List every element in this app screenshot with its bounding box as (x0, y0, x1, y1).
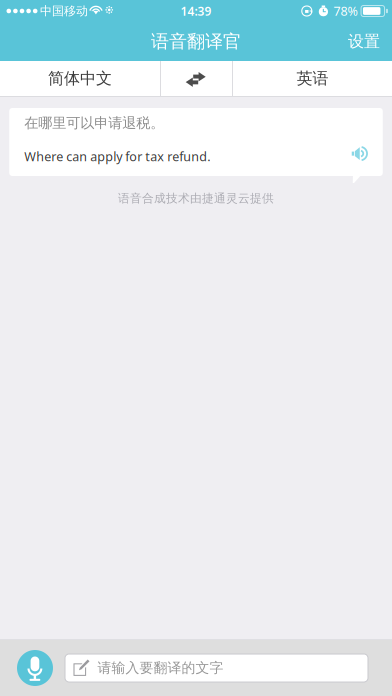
staticText: 设置 (348, 31, 380, 52)
button[interactable]: Record voice (0, 640, 61, 696)
staticText: 14:39 (180, 3, 211, 19)
button[interactable]: 简体中文 (0, 61, 160, 96)
button[interactable]: 设置 (336, 22, 392, 61)
staticText: 语音合成技术由捷通灵云提供 (118, 191, 274, 206)
staticText: 在哪里可以申请退税。 (24, 114, 164, 132)
staticText: 请输入要翻译的文字 (97, 659, 223, 677)
staticText: 简体中文 (48, 68, 112, 89)
button[interactable]: 英语 (233, 61, 392, 96)
staticText: 78% (333, 2, 357, 20)
button[interactable]: 请输入要翻译的文字 (61, 654, 368, 682)
button[interactable]: Play translation (342, 116, 374, 168)
staticText: 英语 (296, 68, 328, 89)
button[interactable]: Swap languages (161, 61, 232, 96)
staticText: 中国移动 (40, 3, 88, 18)
staticText: 语音翻译官 (151, 30, 241, 53)
staticText: Where can apply for tax refund. (24, 148, 210, 165)
